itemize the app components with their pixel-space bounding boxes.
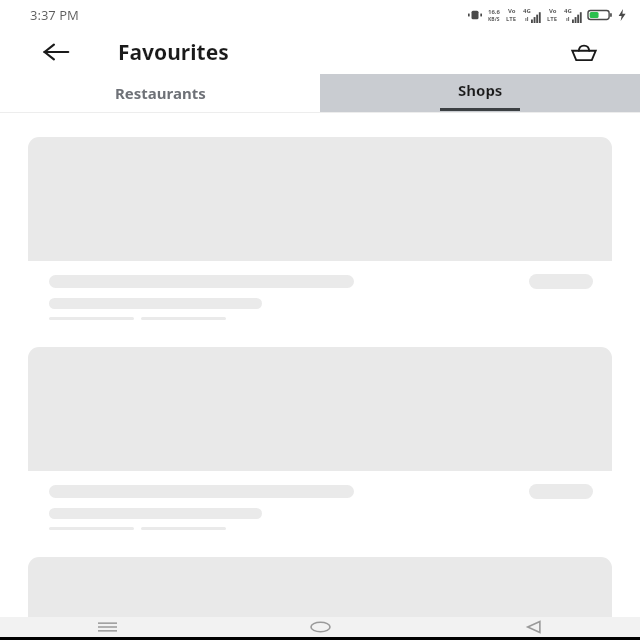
staticText: Shops — [458, 80, 503, 100]
button[interactable]: Shops — [320, 74, 640, 112]
staticText: LTE — [547, 15, 558, 23]
button[interactable]: Back — [427, 617, 640, 637]
staticText: KB/S — [488, 16, 500, 23]
staticText: 16.6 — [488, 8, 500, 16]
button[interactable]: Recent apps — [0, 617, 214, 637]
staticText: Restaurants — [115, 83, 206, 103]
staticText: 4G — [564, 7, 572, 15]
button[interactable]: Back — [34, 30, 78, 74]
staticText: LTE — [506, 15, 517, 23]
staticText: 4G — [523, 7, 531, 15]
staticText: ıl — [525, 15, 529, 23]
staticText: Favourites — [118, 38, 229, 67]
staticText: Vo — [549, 7, 557, 15]
button[interactable]: Home — [214, 617, 427, 637]
staticText: 3:37 PM — [30, 6, 79, 24]
button[interactable]: Cart — [562, 30, 606, 74]
staticText: ıl — [566, 15, 570, 23]
button[interactable] — [28, 137, 612, 320]
button[interactable] — [28, 347, 612, 530]
button[interactable]: Restaurants — [0, 74, 320, 112]
button[interactable] — [28, 557, 612, 640]
staticText: Vo — [508, 7, 516, 15]
